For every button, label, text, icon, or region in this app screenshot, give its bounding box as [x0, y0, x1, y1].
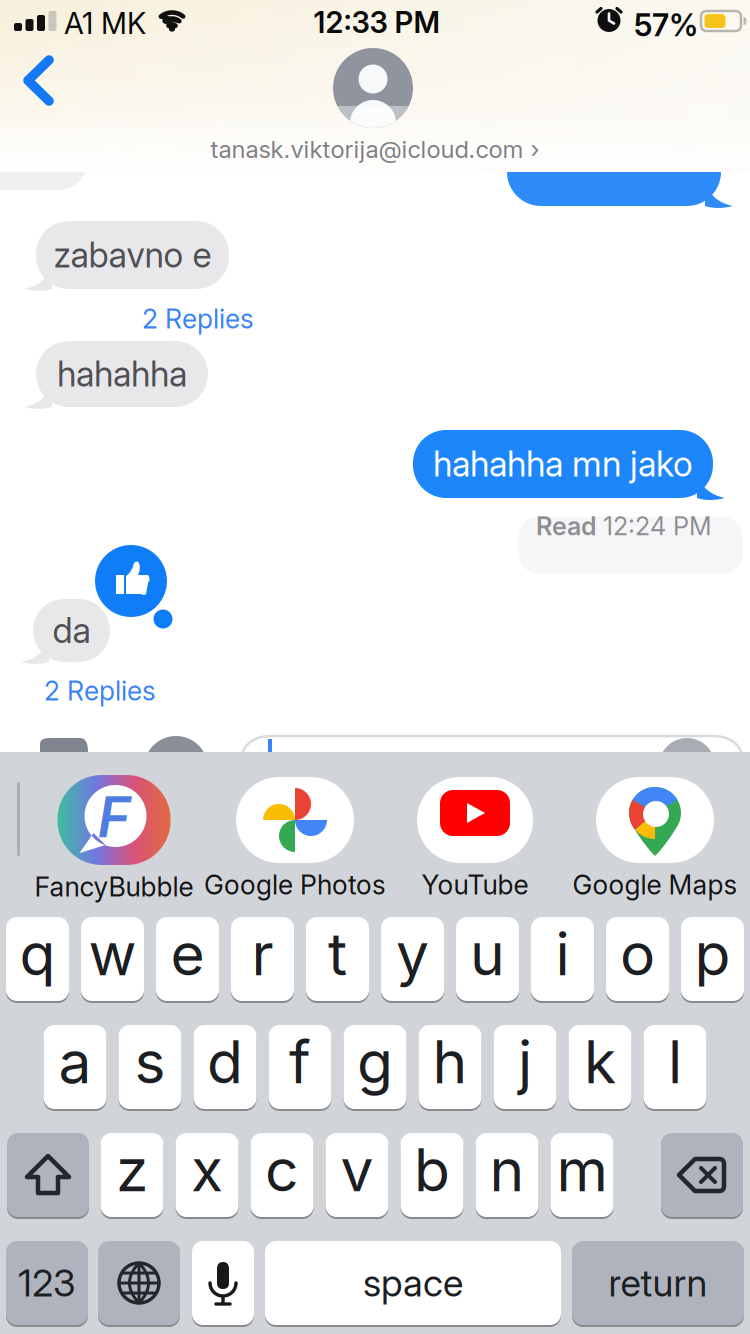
staticText: zabavno e [53, 235, 211, 275]
button[interactable]: b [400, 1133, 463, 1219]
staticText: x [191, 1135, 223, 1205]
staticText: z [116, 1135, 148, 1205]
button[interactable]: x [175, 1133, 238, 1219]
staticText: b [414, 1135, 450, 1205]
staticText: space [363, 1261, 463, 1305]
staticText: l [668, 1027, 682, 1097]
staticText: w [88, 919, 136, 989]
staticText: hahahha [57, 354, 187, 394]
button[interactable]: s [118, 1025, 181, 1111]
button[interactable]: 123 [6, 1241, 88, 1327]
staticText: 12:33 PM [313, 5, 440, 40]
button[interactable]: Camera [0, 0, 750, 1334]
staticText: return [608, 1261, 707, 1305]
staticText: q [19, 919, 55, 989]
staticText: 2 Replies [142, 303, 254, 334]
button[interactable]: 2 Replies [142, 303, 254, 334]
staticText: e [170, 919, 204, 989]
staticText: 2 Replies [44, 675, 156, 706]
staticText: f [289, 1027, 311, 1097]
button[interactable]: z [100, 1133, 163, 1219]
button[interactable]: YouTube [375, 777, 575, 900]
button[interactable]: Shift [7, 1133, 89, 1219]
staticText: d [207, 1027, 243, 1097]
staticText: i [555, 919, 569, 989]
button[interactable]: Google Photos [195, 777, 395, 900]
button[interactable]: m [550, 1133, 613, 1219]
button[interactable]: 2 Replies [44, 675, 156, 706]
staticText: n [489, 1135, 524, 1205]
button[interactable]: Apps [0, 0, 750, 1334]
button[interactable]: n [475, 1133, 538, 1219]
button[interactable]: l [643, 1025, 706, 1111]
staticText: r [251, 919, 273, 989]
staticText: o [620, 919, 655, 989]
button[interactable]: y [381, 917, 444, 1003]
staticText: t [328, 919, 347, 989]
button[interactable]: i [531, 917, 594, 1003]
button[interactable]: k [568, 1025, 631, 1111]
button[interactable]: t [306, 917, 369, 1003]
button[interactable]: v [325, 1133, 388, 1219]
button[interactable]: j [493, 1025, 556, 1111]
button[interactable]: g [343, 1025, 406, 1111]
staticText: tanask.viktorija@icloud.com › [210, 135, 539, 163]
button[interactable]: Delete [661, 1133, 743, 1219]
button[interactable]: e [156, 917, 219, 1003]
button[interactable]: Next keyboard [98, 1241, 180, 1327]
staticText: c [265, 1135, 299, 1205]
staticText: YouTube [421, 869, 528, 900]
staticText: Read 12:24 PM [536, 511, 712, 541]
staticText: m [556, 1135, 607, 1205]
button[interactable]: return [572, 1241, 744, 1327]
staticText: s [134, 1027, 165, 1097]
staticText: A1 MK [64, 6, 146, 41]
staticText: 123 [18, 1261, 76, 1305]
button[interactable]: o [606, 917, 669, 1003]
staticText: Google Photos [204, 869, 386, 900]
button[interactable]: d [193, 1025, 256, 1111]
button[interactable]: p [681, 917, 744, 1003]
button[interactable]: Dictate [192, 1241, 254, 1327]
button[interactable]: q [6, 917, 69, 1003]
button[interactable]: u [456, 917, 519, 1003]
staticText: v [340, 1135, 373, 1205]
staticText: hahahha mn jako [433, 444, 693, 484]
staticText: p [694, 919, 730, 989]
button[interactable]: r [231, 917, 294, 1003]
button[interactable]: F [14, 775, 214, 902]
staticText: F [97, 784, 130, 850]
staticText: u [470, 919, 505, 989]
staticText: h [432, 1027, 467, 1097]
button[interactable]: c [250, 1133, 313, 1219]
staticText: g [357, 1027, 393, 1097]
button[interactable]: h [418, 1025, 481, 1111]
staticText: j [518, 1027, 532, 1097]
button[interactable]: a [43, 1025, 106, 1111]
button[interactable]: Contact details [0, 0, 750, 172]
staticText: FancyBubble [34, 871, 193, 902]
staticText: Google Maps [572, 869, 737, 900]
staticText: a [58, 1027, 91, 1097]
button[interactable]: space [265, 1241, 561, 1327]
staticText: k [584, 1027, 616, 1097]
staticText: 57% [634, 7, 698, 43]
staticText: y [396, 919, 429, 989]
button[interactable]: Back [0, 0, 76, 160]
staticText: da [52, 610, 90, 651]
button[interactable]: f [268, 1025, 331, 1111]
button[interactable]: Google Maps [555, 777, 750, 900]
button[interactable]: w [81, 917, 144, 1003]
button[interactable]: Message field [0, 0, 750, 1334]
